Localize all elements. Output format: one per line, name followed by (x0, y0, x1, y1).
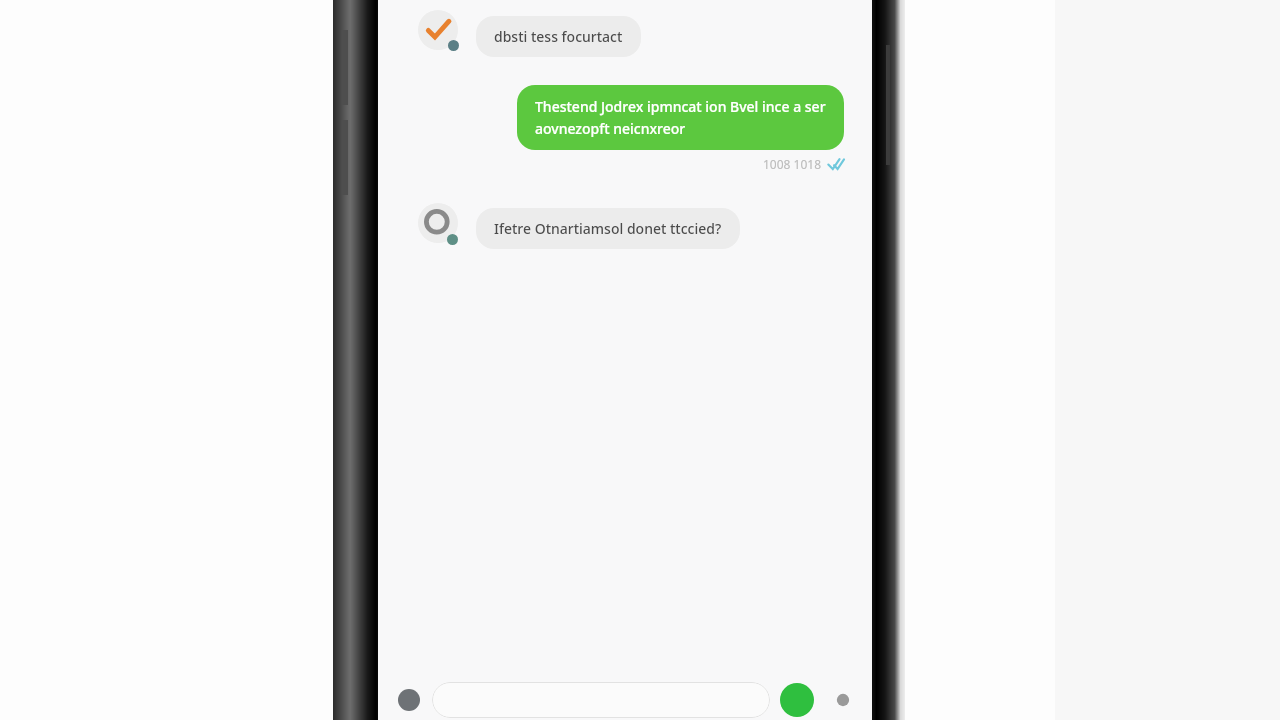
button[interactable]: Send (780, 683, 814, 717)
button[interactable]: Emoji (392, 683, 426, 717)
button[interactable]: Attach (828, 685, 858, 715)
button[interactable]: Ifetre Otnartiamsol donet ttccied? (418, 203, 740, 249)
staticText: 1008 1018 (763, 156, 822, 172)
staticText: Ifetre Otnartiamsol donet ttccied? (494, 219, 722, 238)
button[interactable]: dbsti tess focurtact (418, 10, 641, 56)
staticText: dbsti tess focurtact (494, 27, 623, 46)
button[interactable] (432, 682, 770, 718)
staticText: Thestend Jodrex ipmncat ion Bvel ince a … (535, 97, 826, 138)
button[interactable]: Thestend Jodrex ipmncat ion Bvel ince a … (517, 85, 844, 150)
